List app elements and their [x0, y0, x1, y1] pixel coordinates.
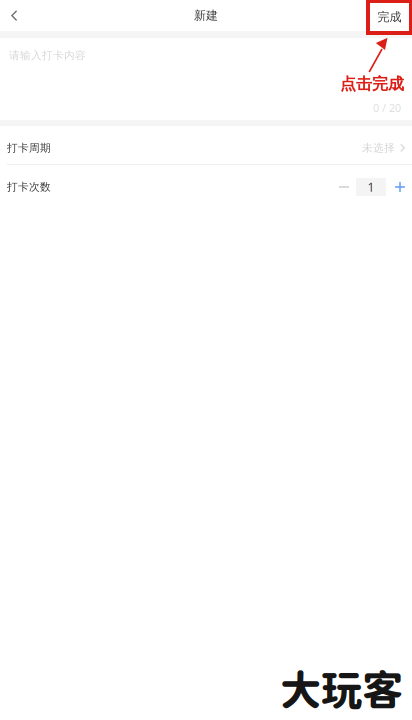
button[interactable]: 增加次数 — [395, 178, 405, 196]
staticText: 大玩客 — [280, 665, 403, 714]
staticText: 请输入打卡内容 — [9, 49, 86, 62]
staticText: 点击完成 — [340, 74, 404, 94]
staticText: 打卡次数 — [7, 180, 51, 193]
button[interactable]: 打卡周期 — [0, 126, 412, 164]
staticText: 打卡周期 — [7, 141, 51, 154]
staticText: 完成 — [377, 10, 401, 24]
button[interactable]: 完成 — [368, 1, 411, 33]
staticText: 未选择 — [362, 141, 395, 154]
button[interactable]: 请输入打卡内容 — [0, 38, 412, 120]
staticText: 新建 — [194, 8, 218, 23]
button[interactable]: 减少次数 — [335, 178, 353, 196]
staticText: 0 / 20 — [373, 101, 401, 115]
staticText: 1 — [367, 179, 374, 195]
button[interactable]: 返回 — [0, 0, 38, 31]
